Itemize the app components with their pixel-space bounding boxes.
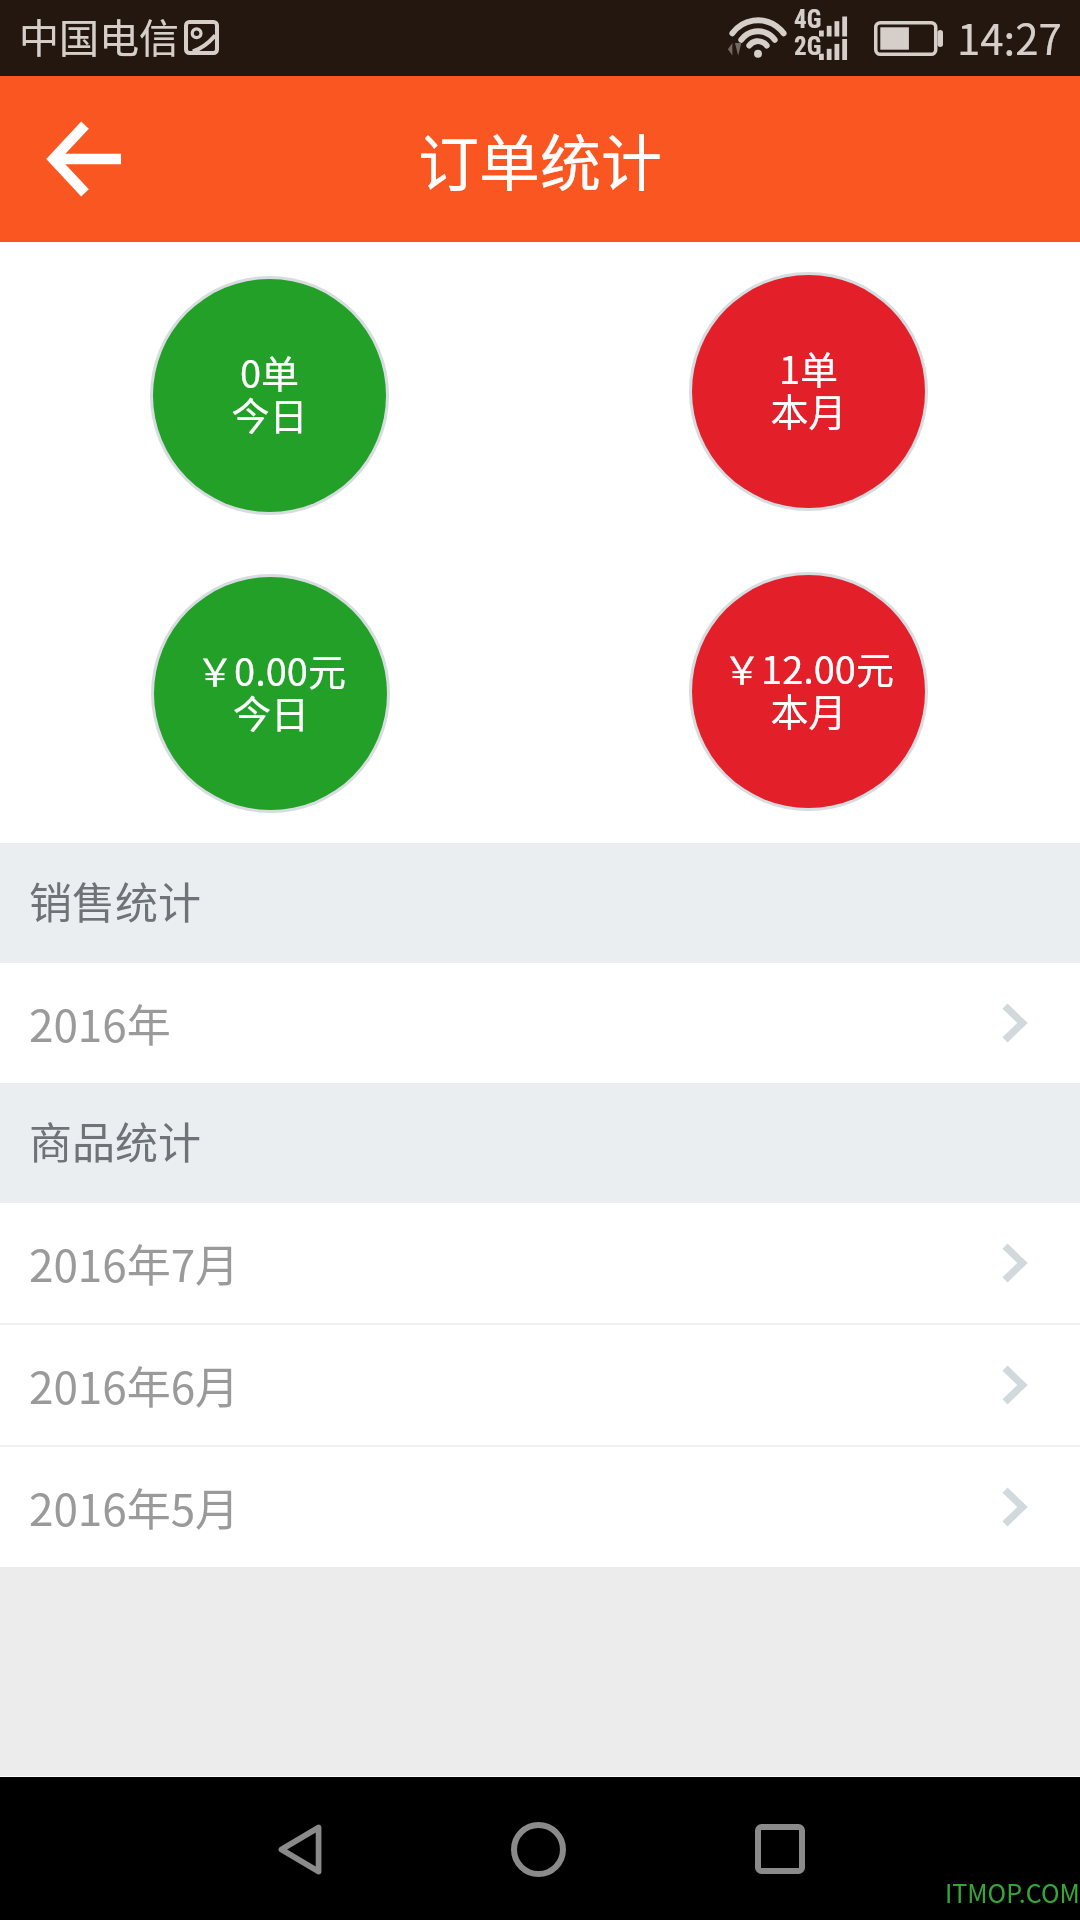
button[interactable]: Back [14, 88, 156, 230]
button[interactable]: 0单 今日 [153, 279, 386, 512]
staticText: 销售统计 [29, 869, 201, 931]
button[interactable]: 2016年 [0, 963, 1080, 1083]
staticText: 中国电信 [19, 7, 179, 65]
button[interactable]: 1单 本月 [692, 275, 925, 508]
button[interactable]: ￥12.00元 本月 [692, 575, 925, 808]
staticText: 2016年7月 [29, 1231, 240, 1295]
staticText: 订单统计 [418, 115, 663, 203]
staticText: 商品统计 [29, 1109, 201, 1171]
staticText: 2016年 [29, 991, 171, 1055]
staticText: ITMOP.COM [945, 1874, 1080, 1910]
staticText: ￥0.00元 今日 [196, 642, 346, 739]
staticText: ￥12.00元 本月 [723, 640, 894, 737]
button[interactable]: Recent apps [710, 1779, 850, 1919]
button[interactable]: 2016年6月 [0, 1325, 1080, 1445]
staticText: 0单 今日 [231, 344, 308, 441]
staticText: 2G [794, 32, 822, 61]
button[interactable]: Home [468, 1779, 608, 1919]
button[interactable]: 2016年7月 [0, 1203, 1080, 1323]
button[interactable]: Back [230, 1779, 370, 1919]
button[interactable]: ￥0.00元 今日 [154, 577, 387, 810]
staticText: 2016年5月 [29, 1475, 240, 1539]
staticText: 4G [794, 5, 822, 34]
staticText: 2016年6月 [29, 1353, 240, 1417]
staticText: 1单 本月 [770, 340, 847, 437]
button[interactable]: 2016年5月 [0, 1447, 1080, 1567]
staticText: 14:27 [957, 6, 1062, 67]
